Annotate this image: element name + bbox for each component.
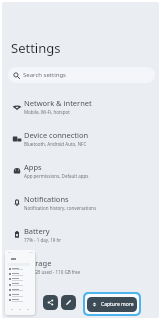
button[interactable]: Device connection (2, 127, 159, 158)
button[interactable]: Notifications (2, 191, 159, 222)
button[interactable]: Network & internet (2, 95, 159, 126)
staticText: Mobile, Wi-Fi, hotspot (24, 109, 70, 115)
staticText: Device connection (24, 130, 89, 140)
staticText: Bluetooth, Android Auto, NFC (24, 141, 87, 147)
staticText: Search settings (23, 71, 66, 79)
button[interactable]: Screenshot preview (5, 250, 35, 315)
staticText: App permissions, Default apps (24, 173, 89, 179)
button[interactable]: Share (43, 295, 58, 310)
button[interactable]: Apps (2, 159, 159, 190)
staticText: Network & internet (24, 98, 92, 108)
button[interactable]: Capture more (85, 294, 139, 314)
button[interactable]: Search settings (8, 67, 155, 83)
staticText: Settings (11, 39, 61, 57)
staticText: 24.5 GB used - 110 GB free (24, 269, 81, 275)
button[interactable]: Storage (2, 255, 159, 286)
staticText: Notifications (24, 194, 69, 204)
staticText: Capture more (101, 301, 134, 308)
staticText: Storage (24, 258, 52, 268)
staticText: 77% - 1 day, 19 hr (24, 237, 62, 243)
button[interactable]: Battery (2, 223, 159, 254)
staticText: Battery (24, 226, 50, 236)
staticText: Apps (24, 162, 42, 172)
staticText: Notification history, conversations (24, 205, 97, 211)
button[interactable]: Edit (61, 295, 76, 310)
